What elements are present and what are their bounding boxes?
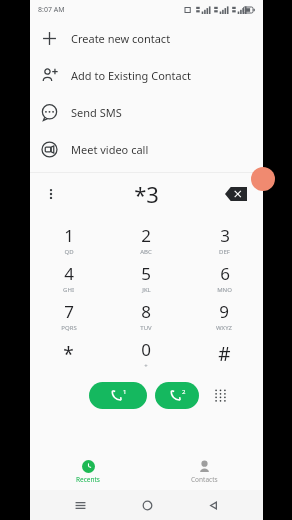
staticText: *3 bbox=[134, 179, 159, 209]
staticText: 7 bbox=[64, 300, 74, 323]
staticText: QD bbox=[64, 248, 74, 256]
button[interactable]: 0 bbox=[107, 335, 185, 373]
button[interactable]: 3 bbox=[185, 221, 263, 259]
staticText: WXYZ bbox=[216, 324, 232, 332]
staticText: JKL bbox=[142, 286, 151, 294]
staticText: Create new contact bbox=[71, 31, 171, 46]
button[interactable]: Home bbox=[130, 490, 164, 520]
staticText: TUV bbox=[140, 324, 152, 332]
staticText: 8:07 AM bbox=[38, 5, 65, 15]
staticText: ABC bbox=[140, 248, 152, 256]
staticText: + bbox=[144, 362, 148, 370]
staticText: 1 bbox=[123, 388, 127, 396]
button[interactable]: * bbox=[30, 335, 107, 373]
button[interactable]: Recents bbox=[30, 454, 146, 490]
staticText: Send SMS bbox=[71, 105, 122, 120]
staticText: 4 bbox=[64, 262, 74, 285]
button[interactable]: 4 bbox=[30, 259, 107, 297]
staticText: Meet video call bbox=[71, 142, 149, 157]
button[interactable]: Create new contact bbox=[30, 20, 263, 57]
staticText: # bbox=[218, 341, 231, 367]
button[interactable]: 8 bbox=[107, 297, 185, 335]
staticText: 2 bbox=[141, 224, 151, 247]
button[interactable]: Meet video call bbox=[30, 131, 263, 168]
staticText: 3 bbox=[220, 224, 230, 247]
staticText: 9 bbox=[219, 300, 229, 323]
button[interactable]: 2 bbox=[107, 221, 185, 259]
button[interactable]: Back bbox=[196, 490, 230, 520]
staticText: Add to Existing Contact bbox=[71, 68, 191, 83]
button[interactable]: 7 bbox=[30, 297, 107, 335]
button[interactable]: # bbox=[185, 335, 263, 373]
button[interactable]: Dialpad bbox=[209, 384, 231, 406]
staticText: * bbox=[63, 341, 74, 367]
staticText: 1 bbox=[64, 224, 74, 247]
button[interactable]: More options bbox=[40, 183, 62, 205]
staticText: MNO bbox=[217, 286, 232, 294]
staticText: GHI bbox=[63, 286, 74, 294]
button[interactable]: 1 bbox=[30, 221, 107, 259]
staticText: 5 bbox=[141, 262, 151, 285]
staticText: 8 bbox=[141, 300, 151, 323]
staticText: Contacts bbox=[191, 475, 218, 484]
button[interactable]: Recent apps bbox=[63, 490, 97, 520]
button[interactable]: 5 bbox=[107, 259, 185, 297]
button[interactable]: Add to Existing Contact bbox=[30, 57, 263, 94]
staticText: PQRS bbox=[61, 324, 77, 332]
button[interactable]: 9 bbox=[185, 297, 263, 335]
staticText: 6 bbox=[220, 262, 230, 285]
button[interactable]: Call with SIM 1 bbox=[89, 382, 147, 409]
staticText: 2 bbox=[182, 388, 186, 396]
button[interactable]: Backspace bbox=[223, 185, 249, 203]
staticText: DEF bbox=[219, 248, 230, 256]
button[interactable]: Send SMS bbox=[30, 94, 263, 131]
staticText: Recents bbox=[76, 475, 100, 484]
button[interactable]: Contacts bbox=[146, 454, 263, 490]
staticText: 0 bbox=[141, 338, 151, 361]
button[interactable]: Call with SIM 2 bbox=[155, 382, 199, 409]
button[interactable]: 6 bbox=[185, 259, 263, 297]
